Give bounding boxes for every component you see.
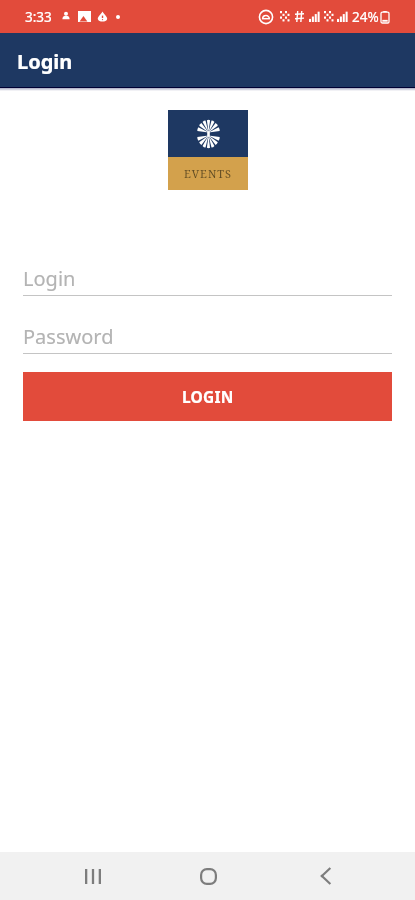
button[interactable]: LOGIN bbox=[23, 372, 392, 421]
staticText: 24% bbox=[352, 8, 379, 26]
button[interactable]: Recent apps bbox=[63, 852, 123, 900]
staticText: LOGIN bbox=[182, 386, 234, 407]
staticText: Login bbox=[17, 48, 73, 75]
staticText: 3:33 bbox=[25, 8, 52, 26]
staticText: Login bbox=[23, 265, 76, 292]
button[interactable]: Home bbox=[178, 852, 238, 900]
button[interactable]: Password bbox=[23, 323, 392, 354]
staticText: EVENTS bbox=[184, 166, 233, 181]
staticText: Password bbox=[23, 323, 114, 350]
button[interactable]: Login bbox=[23, 265, 392, 296]
button[interactable]: Back bbox=[295, 852, 355, 900]
